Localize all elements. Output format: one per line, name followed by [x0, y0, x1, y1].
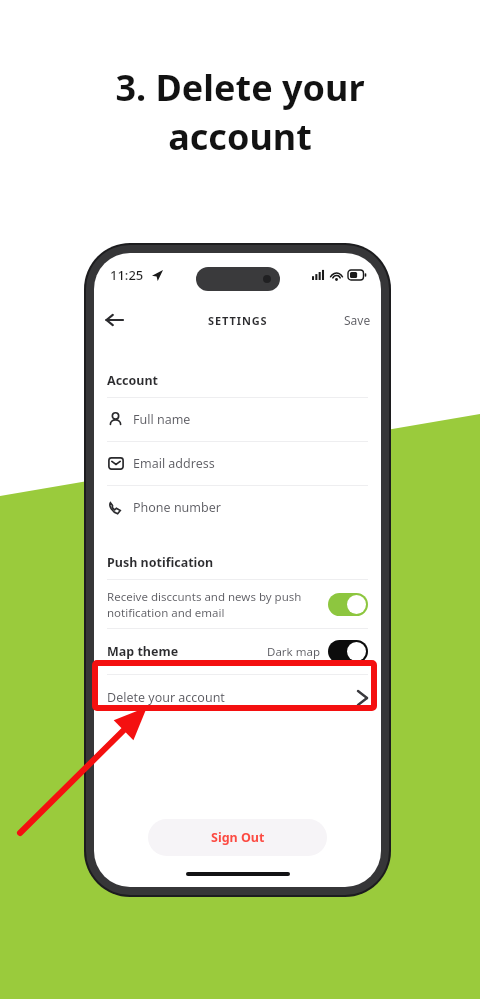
button[interactable]: Receive disccunts and news by push notif…	[94, 580, 381, 628]
button[interactable]: Back	[94, 300, 134, 340]
staticText: Account	[107, 372, 159, 389]
button[interactable]: Sign Out	[148, 819, 327, 856]
staticText: 11:25	[110, 266, 144, 284]
staticText: Phone number	[133, 499, 221, 516]
button[interactable]: Delete your account	[94, 675, 381, 720]
button[interactable]: Full name	[94, 398, 381, 441]
staticText: Dark map	[267, 644, 321, 660]
button[interactable]: Phone number	[94, 486, 381, 529]
button[interactable]: Save	[334, 304, 381, 336]
staticText: SETTINGS	[208, 313, 268, 328]
staticText: Delete your account	[107, 689, 357, 706]
staticText: Sign Out	[211, 829, 265, 846]
staticText: Save	[344, 312, 371, 328]
staticText: Receive disccunts and news by push notif…	[107, 589, 328, 620]
button[interactable]	[328, 640, 368, 663]
button[interactable]: Email address	[94, 442, 381, 485]
staticText: Email address	[133, 455, 215, 472]
button[interactable]: Map theme	[94, 629, 381, 674]
staticText: 3. Delete your account	[115, 63, 365, 161]
staticText: Push notification	[107, 554, 214, 571]
staticText: Full name	[133, 411, 191, 428]
staticText: Map theme	[107, 643, 267, 660]
button[interactable]	[328, 593, 368, 616]
